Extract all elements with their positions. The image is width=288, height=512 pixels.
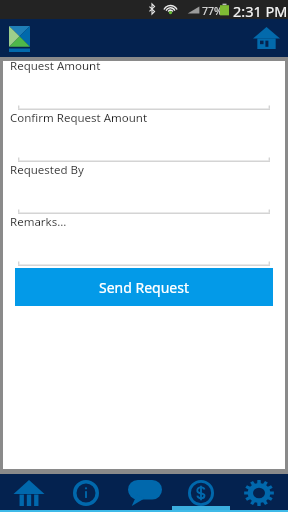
button[interactable]: Payments [172, 474, 230, 512]
button[interactable]: App logo [9, 26, 30, 52]
staticText: 77% [202, 4, 223, 18]
button[interactable]: Accounts [0, 474, 57, 512]
staticText: Requested By [10, 162, 84, 178]
button[interactable]: Settings [230, 474, 288, 512]
button[interactable]: Info [57, 474, 114, 512]
staticText: Send Request [99, 278, 190, 297]
staticText: Request Amount [10, 58, 101, 74]
button[interactable]: Home [253, 27, 280, 49]
button[interactable]: Send Request [15, 268, 273, 306]
staticText: Confirm Request Amount [10, 110, 148, 126]
staticText: 2:31 PM [233, 1, 288, 20]
button[interactable]: Messages [114, 474, 172, 512]
staticText: Remarks… [10, 214, 67, 230]
